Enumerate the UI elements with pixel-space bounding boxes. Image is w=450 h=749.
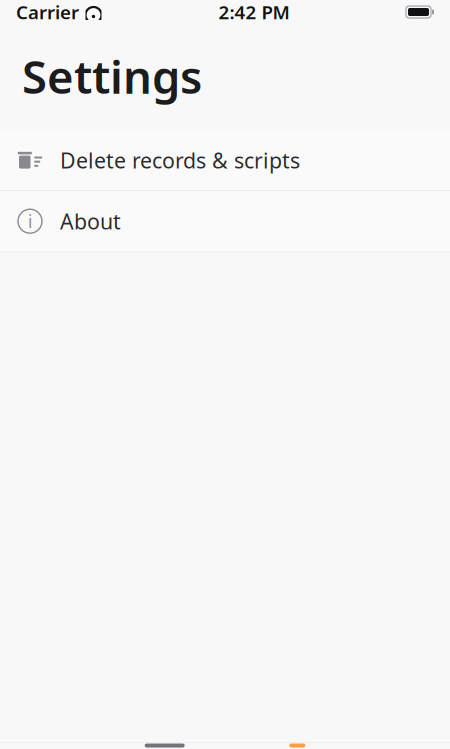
staticText: Delete records & scripts: [60, 146, 300, 174]
button[interactable]: i: [0, 191, 450, 251]
button[interactable]: Settings: [289, 743, 305, 747]
button[interactable]: Records: [145, 743, 185, 747]
staticText: About: [60, 207, 121, 235]
staticText: i: [28, 210, 32, 233]
button[interactable]: Delete records & scripts: [0, 130, 450, 190]
staticText: 2:42 PM: [218, 0, 289, 24]
staticText: Carrier: [16, 0, 79, 24]
staticText: Settings: [22, 46, 202, 106]
